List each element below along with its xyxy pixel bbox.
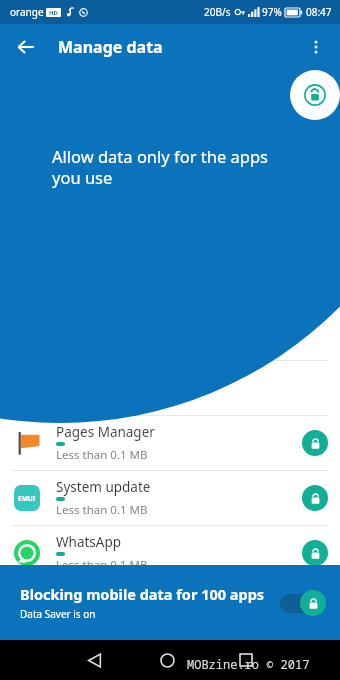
staticText: Less than 0.1 MB [56, 502, 148, 518]
button[interactable]: Back [78, 644, 110, 676]
staticText: Less than 0.1 MB [56, 557, 148, 573]
button[interactable]: WhatsApp [0, 526, 340, 581]
button[interactable]: Blocked [302, 485, 328, 511]
staticText: Allow data only for the apps you use [52, 145, 302, 189]
button[interactable]: Blocking mobile data for 100 apps [0, 565, 340, 640]
staticText: EMUI [18, 494, 36, 503]
staticText: 08:47 [306, 5, 332, 19]
button[interactable]: EMUI [0, 471, 340, 526]
button[interactable]: Unlocked apps [290, 70, 340, 120]
staticText: Less than 0.1 MB [56, 447, 148, 463]
button[interactable]: Data Saver toggle [278, 588, 326, 618]
staticText: System update [56, 478, 151, 496]
staticText: HD [49, 9, 58, 17]
button[interactable]: Messenger [0, 361, 340, 416]
staticText: 97% [262, 5, 282, 19]
staticText: Manage data [58, 36, 163, 58]
button[interactable]: Home [151, 644, 183, 676]
button[interactable]: Pages Manager [0, 416, 340, 471]
staticText: WhatsApp [56, 533, 122, 551]
staticText: MOBzine.ro © 2017 [187, 656, 310, 672]
staticText: 20B/s [204, 5, 231, 19]
button[interactable]: Blocked [302, 430, 328, 456]
staticText: Blocking mobile data for 100 apps [20, 584, 265, 604]
button[interactable]: More options [296, 27, 336, 67]
button[interactable]: Blocked [302, 540, 328, 566]
staticText: orange [10, 5, 44, 19]
button[interactable]: Back [6, 27, 46, 67]
staticText: Data Saver is on [20, 607, 96, 621]
button[interactable]: Recent apps [230, 644, 262, 676]
button[interactable]: Instagram [0, 306, 340, 361]
staticText: Pages Manager [56, 423, 155, 441]
